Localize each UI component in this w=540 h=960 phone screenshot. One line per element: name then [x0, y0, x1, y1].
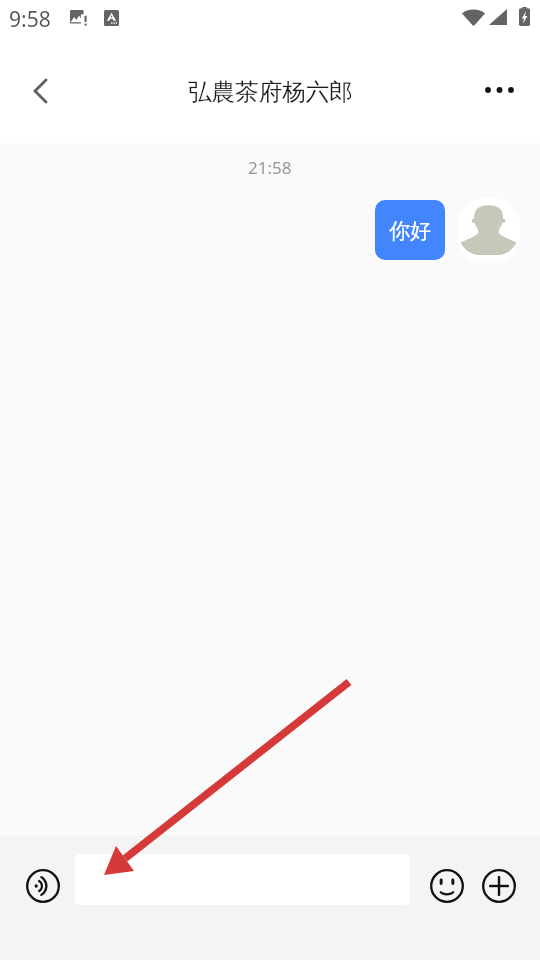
button[interactable]: More options [464, 70, 522, 114]
button[interactable]: Voice message [20, 863, 65, 908]
staticText: 21:58 [248, 156, 292, 179]
button[interactable]: Back [16, 68, 64, 116]
staticText: 你好 [389, 218, 431, 244]
staticText: 弘農茶府杨六郎 [188, 77, 353, 107]
staticText: 9:58 [9, 5, 51, 34]
button[interactable]: Emoji [424, 863, 469, 908]
button[interactable]: More [476, 863, 521, 908]
button[interactable]: Message input [75, 854, 410, 905]
button[interactable]: Avatar [457, 198, 520, 263]
button[interactable]: 你好 [375, 200, 445, 260]
